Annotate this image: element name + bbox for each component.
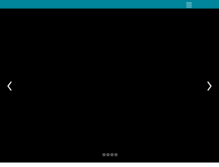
button[interactable]: Previous: [3, 80, 16, 92]
button[interactable]: Page 4: [114, 146, 118, 161]
button[interactable]: Next: [203, 80, 216, 92]
button[interactable]: Page 2: [106, 146, 110, 161]
button[interactable]: Page 3: [110, 146, 114, 161]
button[interactable]: Menu: [184, 0, 193, 9]
button[interactable]: Page 1: [102, 146, 106, 161]
